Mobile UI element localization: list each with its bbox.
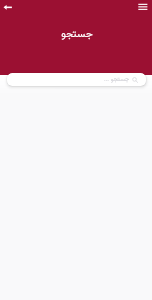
button[interactable]: ... جستجو <box>7 73 146 86</box>
button[interactable]: Back <box>0 0 16 15</box>
staticText: جستجو <box>61 26 93 42</box>
button[interactable]: Menu <box>130 0 152 14</box>
staticText: ... جستجو <box>104 75 130 85</box>
